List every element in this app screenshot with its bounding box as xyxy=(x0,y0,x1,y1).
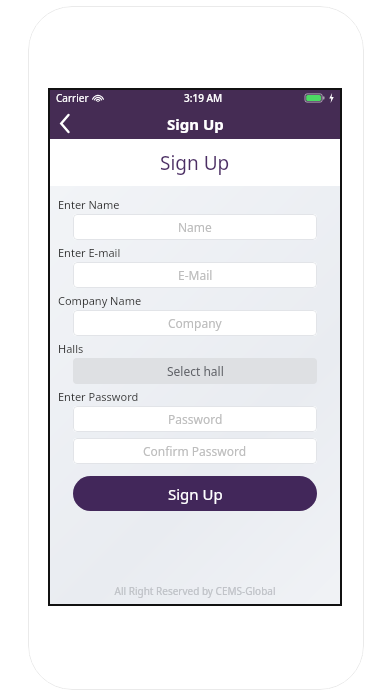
staticText: Company xyxy=(168,315,222,331)
button[interactable]: Name xyxy=(73,214,317,240)
button[interactable]: Password xyxy=(73,406,317,432)
staticText: Enter E-mail xyxy=(58,245,121,260)
staticText: Name xyxy=(178,219,212,235)
staticText: Enter Name xyxy=(58,197,120,212)
staticText: Confirm Password xyxy=(143,443,247,459)
staticText: 3:19 AM xyxy=(184,91,223,105)
button[interactable]: Select hall xyxy=(73,358,317,384)
staticText: Sign Up xyxy=(167,114,224,134)
staticText: Company Name xyxy=(58,293,142,308)
button[interactable]: Sign Up xyxy=(73,476,317,511)
button[interactable]: Back xyxy=(48,108,82,139)
staticText: Password xyxy=(168,411,223,427)
staticText: Sign Up xyxy=(168,484,223,504)
staticText: Halls xyxy=(58,341,84,356)
staticText: All Right Reserved by CEMS-Global xyxy=(48,584,342,598)
staticText: Enter Password xyxy=(58,389,139,404)
button[interactable]: Company xyxy=(73,310,317,336)
staticText: Sign Up xyxy=(160,150,230,176)
button[interactable]: E-Mail xyxy=(73,262,317,288)
staticText: E-Mail xyxy=(178,267,213,283)
staticText: Select hall xyxy=(167,363,224,379)
button[interactable]: Confirm Password xyxy=(73,438,317,464)
staticText: Carrier xyxy=(56,91,89,105)
